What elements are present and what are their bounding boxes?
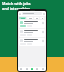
- button[interactable]: [27, 17, 33, 19]
- button[interactable]: Home: [19, 67, 23, 71]
- button[interactable]: Search: [25, 67, 29, 71]
- button[interactable]: Save job: [19, 29, 45, 37]
- button[interactable]: [22, 12, 42, 15]
- button[interactable]: Menu: [19, 13, 21, 15]
- staticText: Match with jobs: [2, 1, 31, 6]
- button[interactable]: [40, 17, 44, 19]
- button[interactable]: Messages: [35, 67, 39, 71]
- button[interactable]: Save job: [19, 38, 45, 46]
- button[interactable]: Profile: [41, 67, 45, 71]
- button[interactable]: Jobs: [30, 67, 34, 71]
- button[interactable]: Save job: [19, 20, 45, 28]
- staticText: and internships: [2, 6, 31, 11]
- button[interactable]: [34, 17, 39, 19]
- button[interactable]: [19, 17, 26, 19]
